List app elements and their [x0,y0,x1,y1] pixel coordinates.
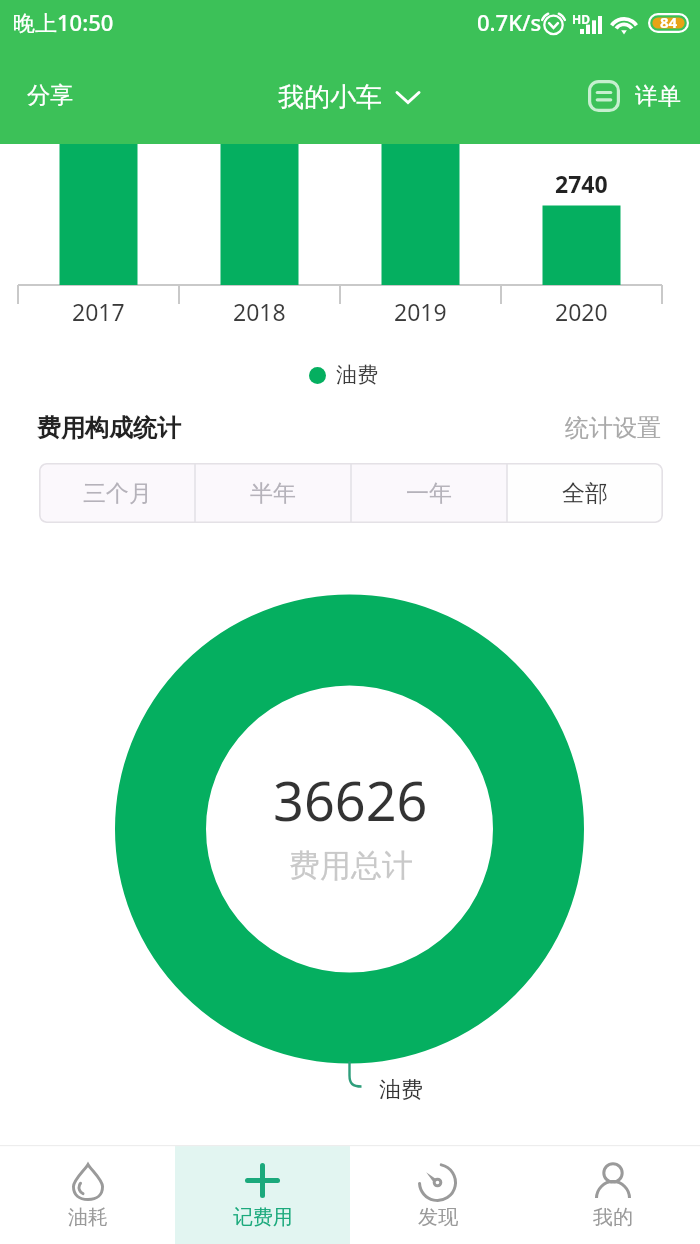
staticText: 分享 [27,81,73,110]
staticText: 0.7K/s [477,7,542,37]
button[interactable]: 我的小车 [266,71,431,124]
button[interactable]: 记费用 [175,1145,350,1244]
staticText: 全部 [562,479,608,508]
staticText: 2020 [555,296,608,327]
staticText: 统计设置 [565,413,661,443]
staticText: 费用总计 [289,846,413,885]
button[interactable]: 发现 [350,1145,525,1244]
staticText: 三个月 [83,479,152,508]
button[interactable]: 三个月 [39,463,195,523]
staticText: 84 [660,12,678,32]
staticText: 2740 [555,168,608,199]
staticText: 2019 [394,296,447,327]
staticText: 晚上10:50 [13,7,114,37]
staticText: 我的小车 [278,81,382,114]
staticText: 半年 [250,479,296,508]
button[interactable]: 详单 [574,69,695,123]
button[interactable]: 一年 [351,463,507,523]
button[interactable]: 全部 [507,463,663,523]
staticText: 油耗 [68,1205,108,1230]
staticText: 详单 [635,82,681,111]
staticText: 一年 [406,479,452,508]
staticText: 36626 [273,763,428,837]
staticText: 油费 [336,362,378,388]
button[interactable]: 分享 [7,66,93,125]
staticText: 2017 [72,296,125,327]
button[interactable]: 半年 [195,463,351,523]
staticText: HD [572,11,590,27]
other: 我的 [595,1163,631,1201]
staticText: 2018 [233,296,286,327]
button[interactable]: 油耗 [0,1145,175,1244]
staticText: 费用构成统计 [37,413,181,443]
staticText: 记费用 [233,1205,293,1230]
other: 发现 [418,1163,457,1202]
staticText: 发现 [418,1205,458,1230]
button[interactable]: 我的 [525,1145,700,1244]
button[interactable]: 统计设置 [563,407,663,449]
other: 记费用 [245,1163,280,1198]
other: 油耗 [72,1163,104,1201]
staticText: 油费 [379,1076,423,1104]
staticText: 我的 [593,1205,633,1230]
